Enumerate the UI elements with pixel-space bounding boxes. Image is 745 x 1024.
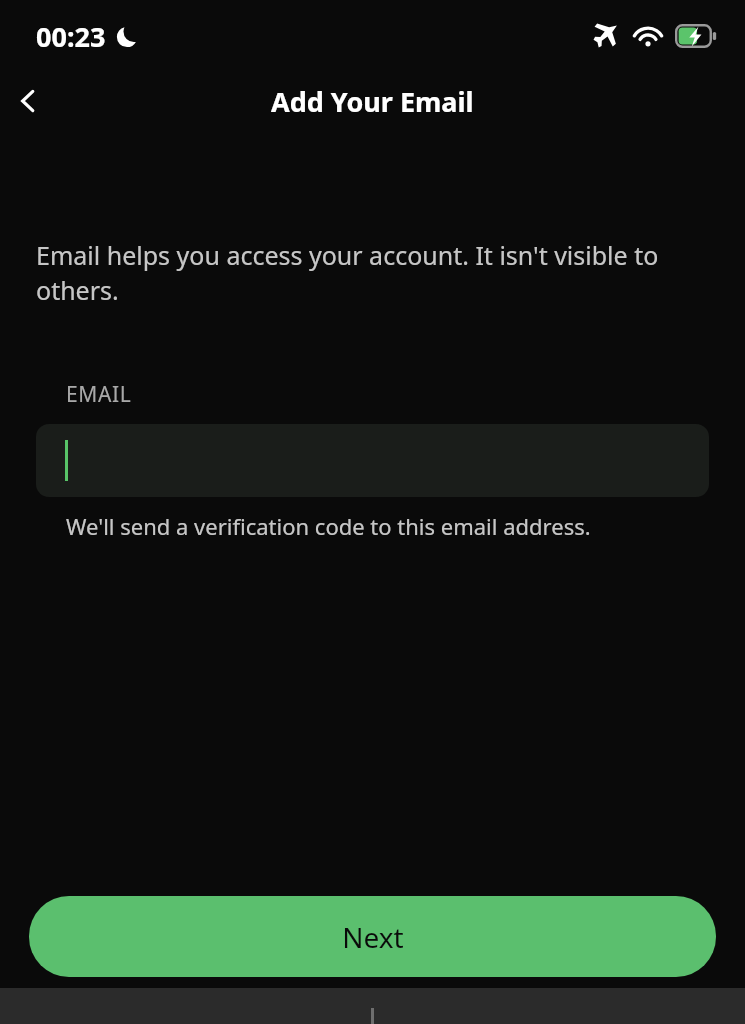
staticText: EMAIL xyxy=(66,380,132,409)
staticText: We'll send a verification code to this e… xyxy=(66,511,591,541)
staticText: Email helps you access your account. It … xyxy=(36,238,697,308)
button[interactable]: Back xyxy=(0,73,56,129)
staticText: 00:23 xyxy=(36,18,106,55)
staticText: Next xyxy=(342,918,404,956)
button[interactable] xyxy=(36,424,709,497)
staticText: Add Your Email xyxy=(271,83,474,120)
button[interactable]: Next xyxy=(29,896,716,977)
